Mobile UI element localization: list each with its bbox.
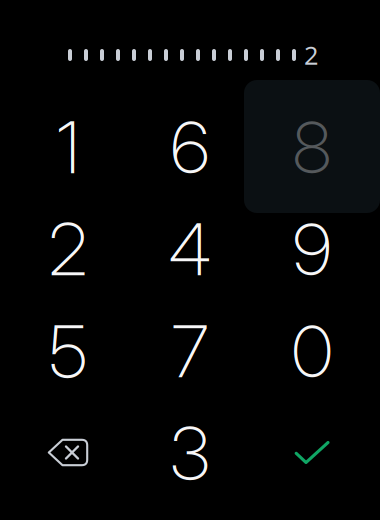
staticText: 9 (292, 205, 331, 292)
button[interactable]: Delete (0, 402, 136, 504)
button[interactable]: 1 (0, 96, 136, 198)
staticText: 5 (49, 307, 87, 394)
button[interactable]: 4 (136, 198, 244, 300)
staticText: 4 (168, 205, 211, 292)
staticText: 2 (48, 205, 87, 292)
staticText: 0 (291, 307, 332, 394)
button[interactable]: 2 (0, 198, 136, 300)
staticText: 6 (170, 103, 209, 190)
button[interactable]: 7 (136, 300, 244, 402)
button[interactable]: 0 (244, 300, 380, 402)
staticText: 2 (304, 38, 318, 72)
staticText: 7 (171, 307, 208, 394)
staticText: 8 (292, 103, 331, 190)
button[interactable]: 9 (244, 198, 380, 300)
button[interactable]: Confirm (244, 402, 380, 504)
staticText: 1 (56, 103, 79, 190)
button[interactable]: 8 (244, 96, 380, 198)
staticText: 3 (170, 409, 210, 496)
button[interactable]: 3 (136, 402, 244, 504)
button[interactable]: 6 (136, 96, 244, 198)
button[interactable]: 5 (0, 300, 136, 402)
